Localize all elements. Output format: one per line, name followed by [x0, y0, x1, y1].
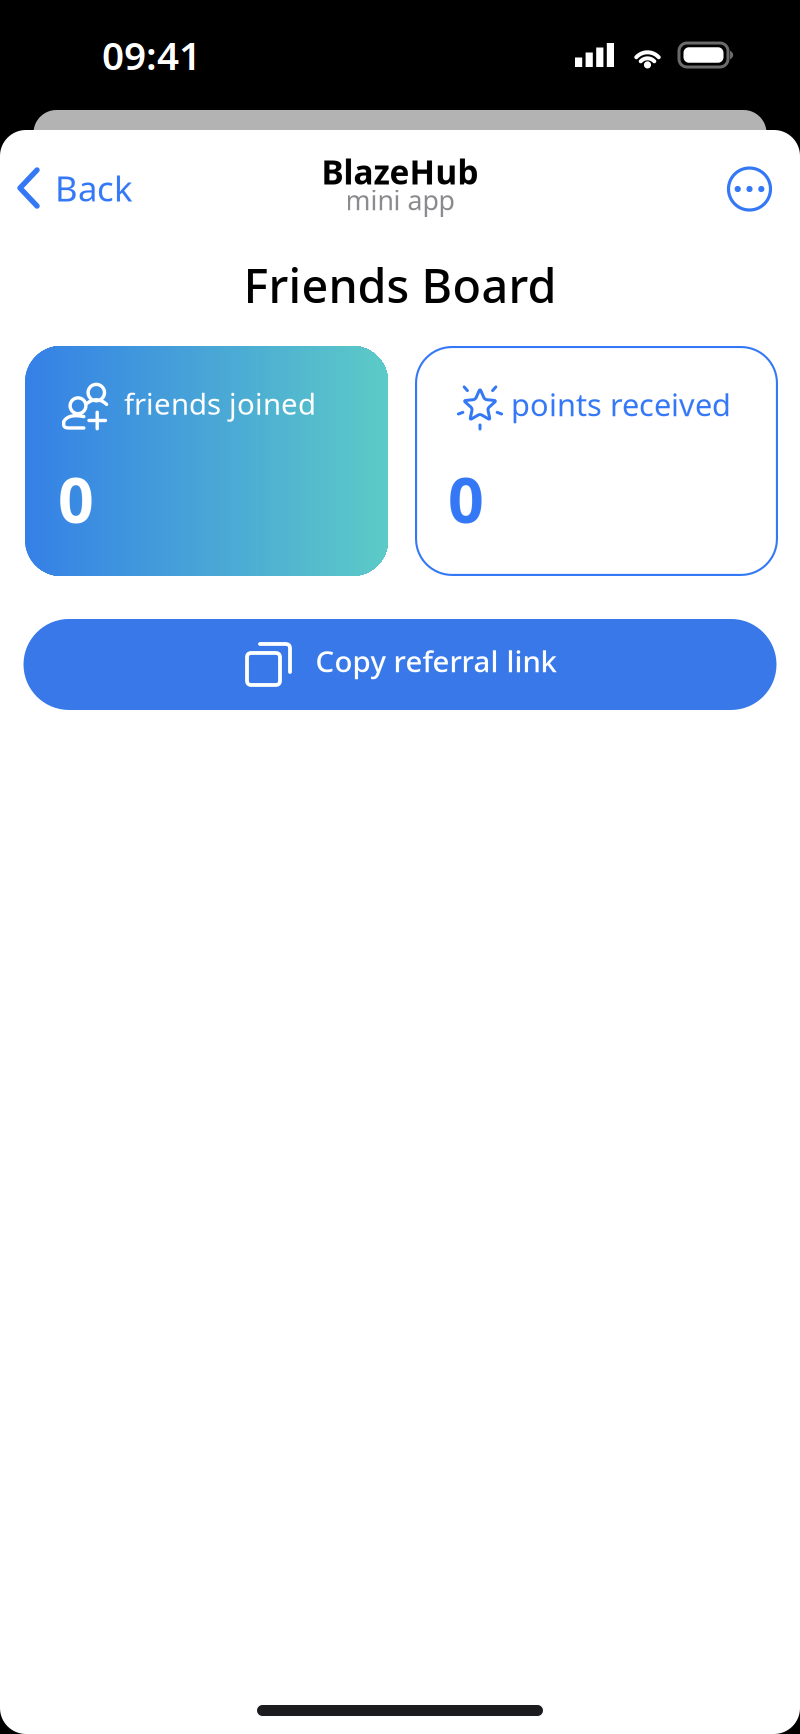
staticText: friends joined [124, 384, 316, 423]
staticText: points received [511, 384, 731, 425]
staticText: BlazeHub [321, 149, 478, 194]
button[interactable]: More [727, 156, 800, 222]
staticText: 0 [58, 457, 94, 540]
staticText: Copy referral link [315, 641, 556, 680]
button[interactable]: Copy referral link [23, 619, 776, 710]
staticText: 09:41 [102, 29, 201, 81]
button[interactable]: Back [0, 156, 145, 223]
staticText: 0 [448, 457, 484, 540]
staticText: Friends Board [243, 254, 556, 316]
staticText: Back [55, 165, 133, 211]
staticText: mini app [345, 182, 454, 218]
